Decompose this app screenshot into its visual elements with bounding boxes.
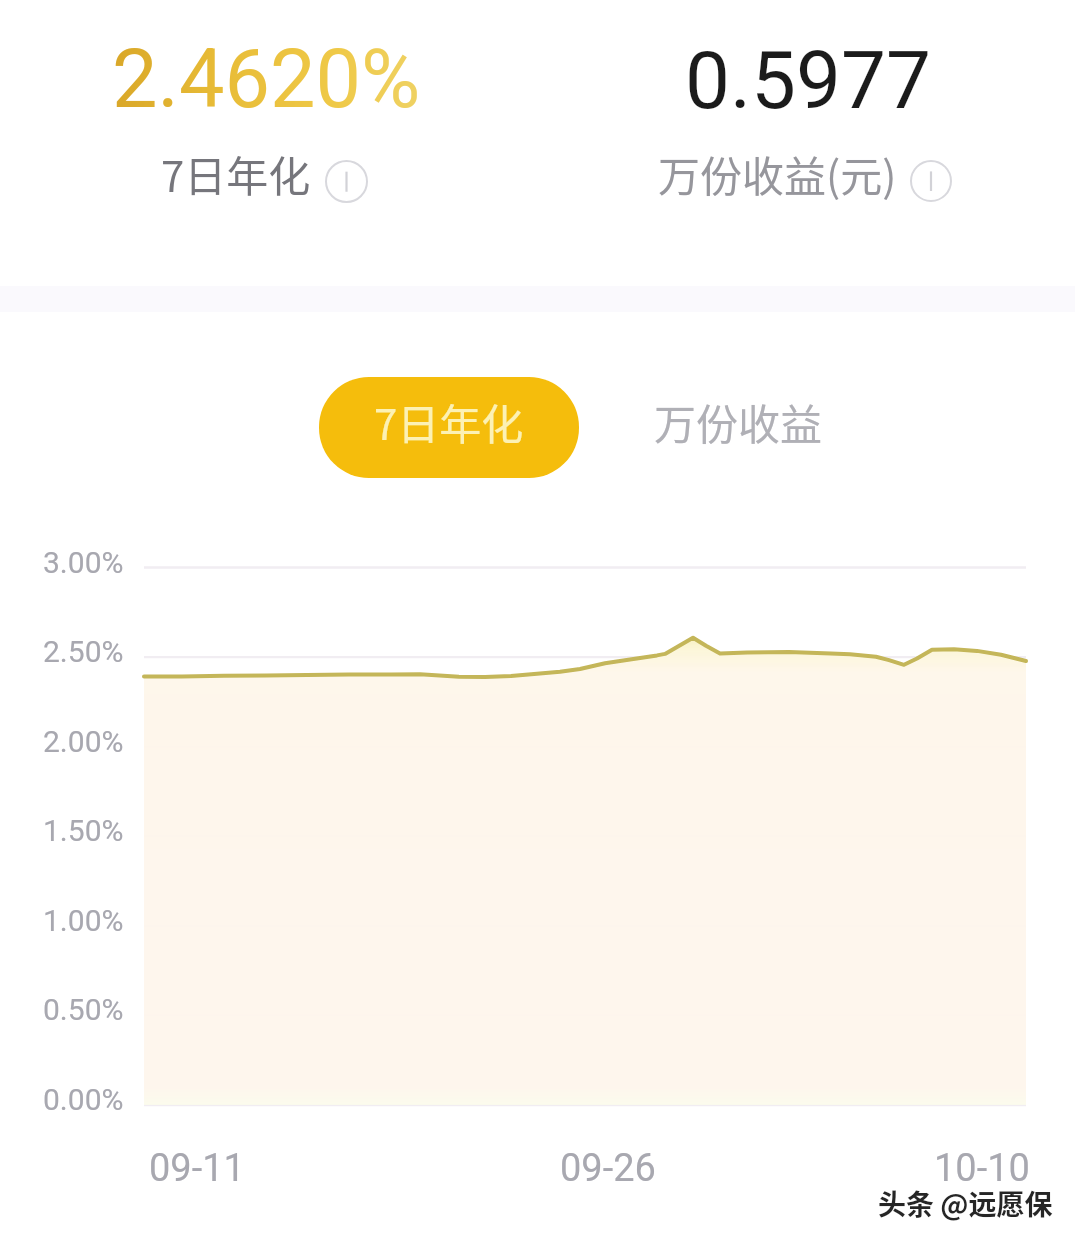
- staticText: 7日年化: [161, 143, 311, 204]
- button[interactable]: 7 day annualised yield info: [325, 160, 368, 203]
- staticText: 10-10: [934, 1146, 1030, 1191]
- staticText: 3.00%: [43, 545, 124, 580]
- staticText: 2.4620%: [112, 32, 421, 127]
- staticText: 万份收益(元): [658, 143, 897, 204]
- staticText: 2.50%: [43, 634, 124, 669]
- staticText: 09-11: [149, 1146, 245, 1191]
- staticText: 1.00%: [43, 903, 124, 938]
- staticText: 万份收益: [654, 391, 823, 452]
- button[interactable]: Income per 10000 units info: [910, 160, 952, 202]
- staticText: 09-26: [560, 1146, 656, 1191]
- button[interactable]: 7日年化: [319, 377, 579, 478]
- staticText: 2.00%: [43, 724, 124, 759]
- button[interactable]: 万份收益: [620, 377, 850, 478]
- staticText: 0.50%: [43, 992, 124, 1027]
- button[interactable]: 0.5977: [537, 0, 1075, 250]
- button[interactable]: 2.4620%: [0, 0, 537, 250]
- staticText: 1.50%: [43, 813, 124, 848]
- staticText: 0.00%: [43, 1082, 124, 1117]
- staticText: 7日年化: [374, 391, 524, 452]
- staticText: 0.5977: [685, 34, 931, 128]
- staticText: 头条 @远愿保: [878, 1183, 1053, 1224]
